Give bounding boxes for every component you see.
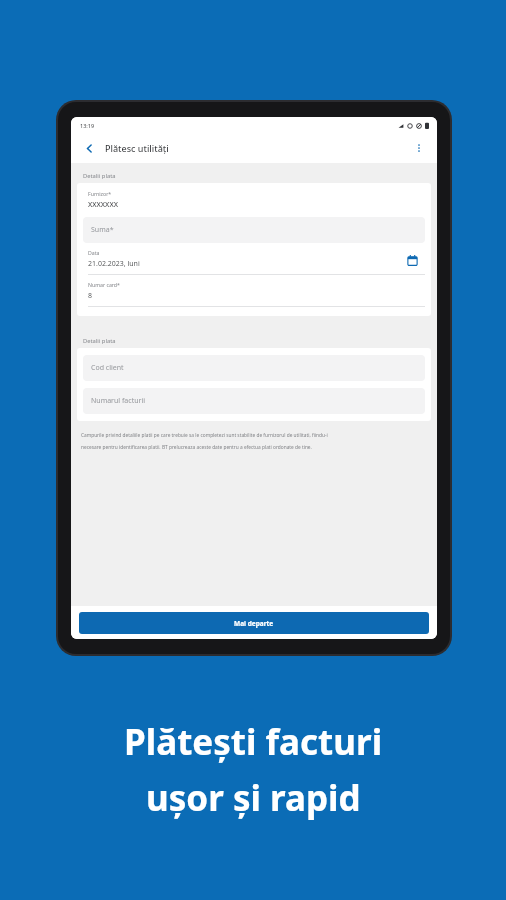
button[interactable]: Back <box>80 139 98 157</box>
staticText: Plătești facturi <box>124 718 383 766</box>
button[interactable]: Numarul facturii <box>83 388 425 414</box>
button[interactable]: Data <box>83 247 425 275</box>
staticText: Data <box>88 249 100 256</box>
button[interactable]: More options <box>410 139 428 157</box>
staticText: Numarul facturii <box>91 396 146 406</box>
staticText: necesare pentru identificarea platii. BT… <box>81 444 312 451</box>
button[interactable]: Suma* <box>83 217 425 243</box>
staticText: 8 <box>88 291 93 301</box>
staticText: Detalii plata <box>83 172 116 180</box>
staticText: Detalii plata <box>83 337 116 345</box>
staticText: Mai departe <box>234 619 274 628</box>
button[interactable]: Furnizor* <box>83 189 425 210</box>
staticText: Plătesc utilități <box>105 142 169 154</box>
button[interactable]: Numar card* <box>83 279 425 307</box>
staticText: XXXXXXX <box>88 200 118 210</box>
button[interactable]: Cod client <box>83 355 425 381</box>
button[interactable]: Mai departe <box>79 612 429 634</box>
staticText: 21.02.2023, luni <box>88 259 140 269</box>
button[interactable]: Pick date <box>405 253 419 267</box>
staticText: Numar card* <box>88 281 120 288</box>
staticText: Furnizor* <box>88 190 112 197</box>
staticText: Suma* <box>91 225 114 235</box>
staticText: ușor și rapid <box>146 774 361 822</box>
staticText: 13:19 <box>80 122 95 129</box>
staticText: Cod client <box>91 363 124 373</box>
staticText: Campurile privind detaliile platii pe ca… <box>81 432 328 439</box>
